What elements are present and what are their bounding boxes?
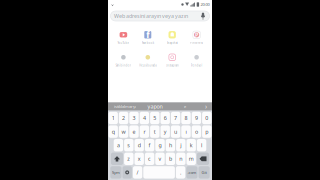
button[interactable]: a [114,139,123,151]
staticText: z [127,155,130,162]
staticText: YouTube [117,41,129,45]
button[interactable]: f [145,139,154,151]
button[interactable]: 2 [119,112,128,124]
staticText: q [112,128,115,135]
staticText: 20:00 [200,2,209,7]
button[interactable]: p [202,125,211,138]
button[interactable]: yapon [140,102,170,110]
staticText: Git [202,170,207,175]
button[interactable]: istiklalmarşı [110,102,140,110]
button[interactable]: s [124,139,133,151]
button[interactable]: Backspace [197,153,209,165]
button[interactable]: / [133,166,142,179]
button[interactable]: 9 [192,112,201,124]
staticText: 9 [195,114,198,122]
staticText: p [205,128,208,135]
button[interactable]: Shift [111,153,123,165]
button[interactable]: b [166,153,175,165]
button[interactable]: u [171,125,180,138]
button[interactable]: x [134,153,144,165]
staticText: › [205,102,207,111]
button[interactable]: Sym [110,166,121,179]
button[interactable]: c [145,153,154,165]
button[interactable]: YouTube [111,29,136,45]
staticText: y [164,128,167,135]
button[interactable]: n [176,153,185,165]
button[interactable]: d [134,139,144,151]
button[interactable]: Sahibinden [111,52,136,68]
staticText: P [195,31,198,38]
button[interactable]: g [155,139,165,151]
staticText: Sym [112,170,120,175]
staticText: Hepsiburada [139,64,156,67]
staticText: l [201,142,202,149]
staticText: x [138,155,141,162]
button[interactable]: q [108,125,118,138]
button[interactable]: Snapchat [160,29,184,45]
button[interactable]: l [197,139,206,151]
staticText: 2 [122,114,125,122]
staticText: t [154,128,156,135]
button[interactable]: e [129,125,139,138]
button[interactable]: . [176,166,185,179]
button[interactable]: 4 [140,112,149,124]
staticText: 8 [184,114,187,122]
button[interactable]: k [186,139,196,151]
button[interactable]: Search or type web address [108,9,212,23]
staticText: Snapchat [167,41,178,45]
staticText: m [189,155,194,162]
staticText: c [148,155,151,162]
button[interactable]: w [119,125,128,138]
button[interactable]: y [160,125,170,138]
button[interactable]: ı [181,125,191,138]
staticText: . [180,169,181,176]
staticText: e [132,128,135,135]
button[interactable]: Trendyol [184,52,209,68]
staticText: j [180,142,181,149]
button[interactable]: j [176,139,185,151]
staticText: Trendyol [191,64,203,67]
staticText: istiklalmarşı [114,104,136,109]
staticText: 4 [143,114,146,122]
staticText: b [169,155,172,162]
staticText: 5 [153,114,156,122]
button[interactable]: 8 [181,112,191,124]
button[interactable]: z [124,153,133,165]
button[interactable]: 5 [150,112,159,124]
staticText: 7 [174,114,177,122]
staticText: w [122,128,126,135]
button[interactable]: t [150,125,159,138]
staticText: h [169,142,172,149]
staticText: e [184,104,186,109]
button[interactable]: m [186,153,196,165]
button[interactable]: f [136,29,160,45]
staticText: f [149,142,151,149]
staticText: Pinterest [190,41,203,45]
staticText: s [127,142,130,149]
button[interactable]: o [192,125,201,138]
button[interactable]: Instagram [160,52,184,68]
staticText: / [137,169,139,176]
button[interactable]: 1 [108,112,118,124]
staticText: k [190,142,193,149]
button[interactable]: 3 [129,112,139,124]
button[interactable]: Hepsiburada [136,52,160,68]
button[interactable]: 7 [171,112,180,124]
staticText: n [179,155,182,162]
button[interactable]: 6 [160,112,170,124]
button[interactable]: r [140,125,149,138]
button[interactable]: Space [143,166,175,179]
staticText: o [195,128,198,135]
button[interactable]: v [155,153,165,165]
button[interactable]: Emoji [122,166,132,179]
button[interactable]: P [184,29,209,45]
button[interactable]: .com [186,166,197,179]
staticText: Sahibinden [115,64,131,67]
button[interactable]: Git [198,166,210,179]
button[interactable]: 0 [202,112,211,124]
button[interactable]: More suggestions [202,102,210,110]
staticText: u [174,128,177,135]
button[interactable]: e [170,102,200,110]
button[interactable]: h [166,139,175,151]
